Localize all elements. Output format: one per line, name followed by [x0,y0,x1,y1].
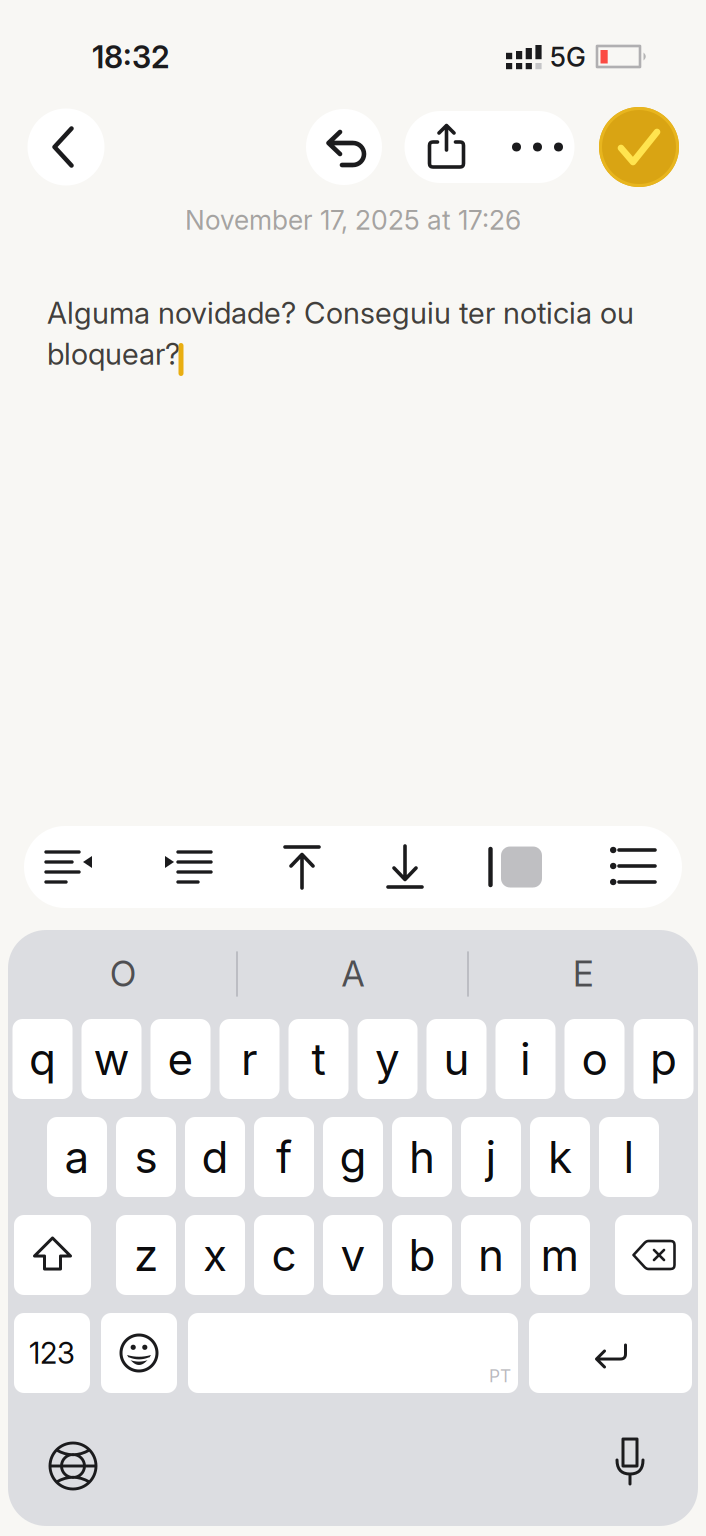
button[interactable]: b [392,1215,452,1295]
button[interactable]: c [254,1215,314,1295]
button[interactable]: t [288,1019,348,1099]
staticText: d [201,1130,228,1184]
button[interactable]: y [357,1019,417,1099]
button[interactable] [469,826,561,908]
button[interactable]: 123 [14,1313,90,1393]
button[interactable]: r [219,1019,279,1099]
staticText: n [478,1228,504,1282]
staticText: h [409,1130,435,1184]
button[interactable]: k [530,1117,590,1197]
staticText: j [485,1130,496,1184]
button[interactable]: O [23,952,223,996]
staticText: b [408,1228,435,1282]
staticText: y [375,1032,400,1086]
button[interactable] [14,1215,91,1295]
button[interactable] [494,111,580,183]
staticText: q [29,1032,56,1086]
button[interactable]: s [116,1117,176,1197]
staticText: p [650,1032,677,1086]
button[interactable]: j [461,1117,521,1197]
staticText: i [520,1032,531,1086]
button[interactable] [188,1313,518,1393]
button[interactable]: i [495,1019,555,1099]
staticText: Alguma novidade? Conseguiu ter noticia o… [47,295,634,331]
staticText: A [341,953,364,995]
button[interactable]: E [483,952,683,996]
button[interactable] [529,1313,692,1393]
button[interactable] [306,109,382,185]
button[interactable]: q [12,1019,72,1099]
button[interactable] [600,1433,660,1493]
button[interactable] [615,1215,692,1295]
staticText: bloquear? [47,336,180,372]
staticText: g [339,1130,366,1184]
button[interactable]: l [599,1117,659,1197]
button[interactable] [256,826,348,908]
staticText: o [581,1032,607,1086]
button[interactable]: d [185,1117,245,1197]
staticText: 18:32 [92,38,170,75]
button[interactable] [359,826,451,908]
staticText: v [340,1228,365,1282]
button[interactable]: A [253,952,453,996]
button[interactable] [27,108,104,185]
button[interactable] [587,826,679,908]
button[interactable]: n [461,1215,521,1295]
button[interactable] [43,1436,103,1496]
staticText: e [167,1032,193,1086]
staticText: November 17, 2025 at 17:26 [185,204,521,236]
staticText: z [134,1228,158,1282]
button[interactable] [599,107,679,187]
staticText: m [540,1228,579,1282]
button[interactable] [23,826,115,908]
button[interactable]: p [633,1019,693,1099]
button[interactable]: f [254,1117,314,1197]
button[interactable]: e [150,1019,210,1099]
staticText: PT [489,1365,511,1386]
staticText: c [271,1228,296,1282]
button[interactable]: x [185,1215,245,1295]
button[interactable] [404,111,488,183]
staticText: u [443,1032,469,1086]
staticText: 123 [29,1335,75,1371]
button[interactable]: z [116,1215,176,1295]
staticText: 5G [550,41,586,73]
button[interactable]: g [323,1117,383,1197]
button[interactable] [142,826,234,908]
staticText: t [311,1032,325,1086]
staticText: w [93,1032,129,1086]
button[interactable] [101,1313,177,1393]
staticText: r [241,1032,258,1086]
staticText: x [203,1228,227,1282]
button[interactable]: w [81,1019,141,1099]
staticText: f [276,1130,292,1184]
staticText: k [548,1130,572,1184]
staticText: E [573,953,593,995]
button[interactable]: v [323,1215,383,1295]
button[interactable]: m [530,1215,590,1295]
button[interactable]: u [426,1019,486,1099]
button[interactable]: o [564,1019,624,1099]
button[interactable]: h [392,1117,452,1197]
staticText: O [110,953,136,995]
button[interactable]: a [47,1117,107,1197]
staticText: l [623,1130,634,1184]
staticText: s [134,1130,157,1184]
staticText: a [64,1130,89,1184]
